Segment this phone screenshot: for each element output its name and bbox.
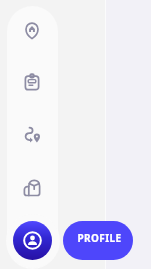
button[interactable]: Home xyxy=(18,17,46,45)
button[interactable]: Bag xyxy=(18,174,46,202)
button[interactable]: Profile avatar xyxy=(13,221,52,260)
button[interactable]: Orders xyxy=(18,68,46,96)
button[interactable]: PROFILE xyxy=(63,221,133,260)
staticText: PROFILE xyxy=(77,231,122,245)
button[interactable]: Routes xyxy=(18,121,46,149)
